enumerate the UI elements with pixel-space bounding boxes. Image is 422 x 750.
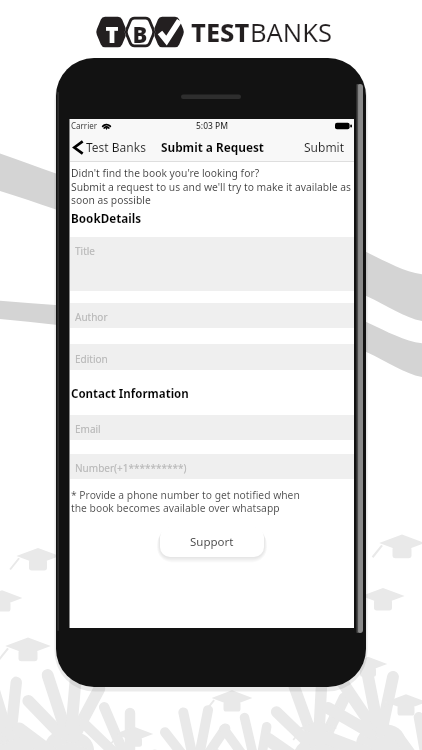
staticText: Email bbox=[75, 422, 101, 436]
staticText: BookDetails bbox=[71, 210, 142, 226]
button[interactable]: Submit bbox=[304, 139, 354, 155]
staticText: Contact Information bbox=[71, 386, 189, 402]
staticText: Submit bbox=[304, 139, 345, 155]
staticText: Support bbox=[190, 534, 234, 550]
staticText: TEST bbox=[191, 15, 250, 50]
button[interactable]: Test Banks bbox=[70, 139, 146, 155]
staticText: Carrier bbox=[71, 120, 98, 131]
button[interactable]: Author bbox=[70, 303, 354, 328]
staticText: Submit a Request bbox=[161, 139, 264, 155]
staticText: B bbox=[130, 19, 150, 49]
staticText: Title bbox=[75, 244, 95, 258]
staticText: T bbox=[102, 19, 122, 49]
staticText: * Provide a phone number to get notified… bbox=[71, 488, 300, 515]
staticText: Edition bbox=[75, 352, 108, 366]
staticText: Didn't find the book you're looking for?… bbox=[71, 166, 352, 207]
button[interactable]: Email bbox=[70, 415, 354, 440]
button[interactable]: Edition bbox=[70, 344, 354, 370]
button[interactable]: Support bbox=[160, 527, 264, 557]
staticText: 5:03 PM bbox=[196, 120, 229, 132]
staticText: Author bbox=[75, 310, 108, 324]
staticText: Number(+1**********) bbox=[75, 461, 187, 475]
staticText: BANKS bbox=[250, 15, 333, 50]
button[interactable]: Number(+1**********) bbox=[70, 454, 354, 479]
staticText: Test Banks bbox=[86, 139, 146, 155]
